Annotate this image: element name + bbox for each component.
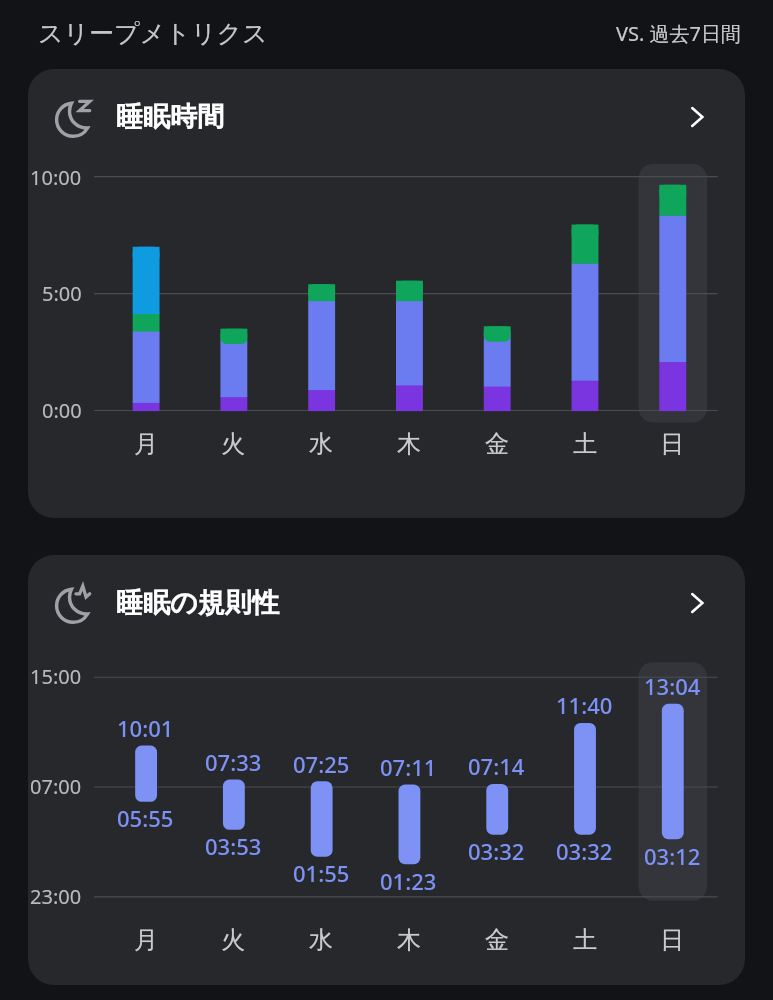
staticText: 金 — [485, 925, 509, 955]
staticText: 10:01 — [117, 713, 174, 743]
staticText: 月 — [134, 925, 158, 955]
staticText: 日 — [660, 429, 684, 459]
staticText: 07:33 — [205, 747, 262, 777]
staticText: 01:23 — [380, 866, 437, 896]
staticText: 23:00 — [30, 883, 82, 910]
button[interactable]: Open details — [675, 581, 719, 625]
staticText: 03:53 — [205, 831, 262, 861]
staticText: 水 — [309, 925, 333, 955]
staticText: 01:55 — [293, 858, 350, 888]
staticText: 土 — [573, 429, 597, 459]
staticText: スリープメトリクス — [38, 18, 268, 49]
staticText: 日 — [660, 925, 684, 955]
staticText: 07:11 — [380, 752, 437, 782]
other: Sleep duration — [52, 94, 98, 140]
button[interactable]: Sleep regularity — [28, 555, 745, 985]
staticText: 0:00 — [42, 397, 82, 424]
staticText: 睡眠時間 — [116, 100, 224, 134]
staticText: 火 — [221, 429, 245, 459]
staticText: 03:12 — [644, 841, 701, 871]
other: Sleep regularity — [52, 580, 98, 626]
staticText: 水 — [309, 429, 333, 459]
staticText: 10:00 — [30, 164, 82, 191]
staticText: 15:00 — [30, 663, 82, 690]
staticText: 13:04 — [644, 671, 701, 701]
staticText: 睡眠の規則性 — [116, 586, 279, 620]
staticText: VS. 過去7日間 — [616, 20, 741, 47]
staticText: 11:40 — [556, 690, 613, 720]
staticText: 05:55 — [117, 803, 174, 833]
staticText: 火 — [221, 925, 245, 955]
staticText: 07:25 — [293, 749, 350, 779]
staticText: 木 — [397, 925, 421, 955]
staticText: 07:00 — [30, 773, 82, 800]
staticText: 03:32 — [468, 836, 525, 866]
button[interactable]: Open details — [675, 95, 719, 139]
staticText: 月 — [134, 429, 158, 459]
staticText: 5:00 — [42, 280, 82, 307]
staticText: 03:32 — [556, 836, 613, 866]
staticText: 07:14 — [468, 751, 525, 781]
staticText: 金 — [485, 429, 509, 459]
staticText: 木 — [397, 429, 421, 459]
staticText: 土 — [573, 925, 597, 955]
button[interactable]: Sleep duration — [28, 69, 745, 518]
